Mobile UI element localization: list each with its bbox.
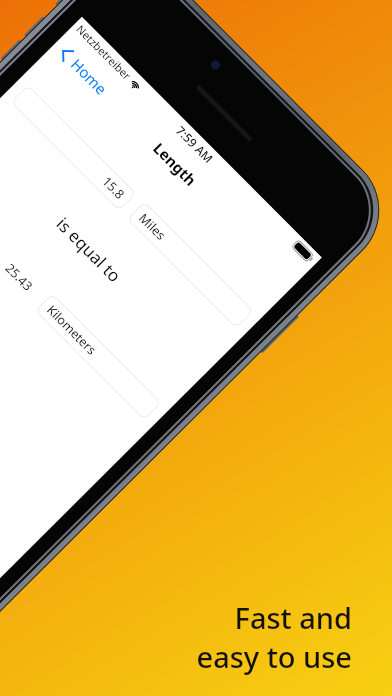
button[interactable]: Home <box>52 39 116 103</box>
other: Battery <box>291 239 317 265</box>
staticText: 25.43 <box>1 260 36 294</box>
staticText: Netzbetreiber <box>73 22 135 83</box>
staticText: Fast and <box>234 598 352 637</box>
staticText: Length <box>48 36 302 291</box>
staticText: is equal to <box>0 121 217 378</box>
staticText: easy to use <box>196 637 352 676</box>
button[interactable]: Kilometers <box>35 293 162 420</box>
staticText: 7:59 AM <box>69 18 320 270</box>
staticText: Kilometers <box>43 302 100 359</box>
button[interactable]: 15.8 <box>10 84 137 211</box>
button[interactable]: 25.43 <box>0 176 45 303</box>
staticText: Home <box>67 54 111 99</box>
staticText: 15.8 <box>99 173 128 203</box>
staticText: Miles <box>135 210 169 244</box>
button[interactable]: Miles <box>127 201 254 329</box>
